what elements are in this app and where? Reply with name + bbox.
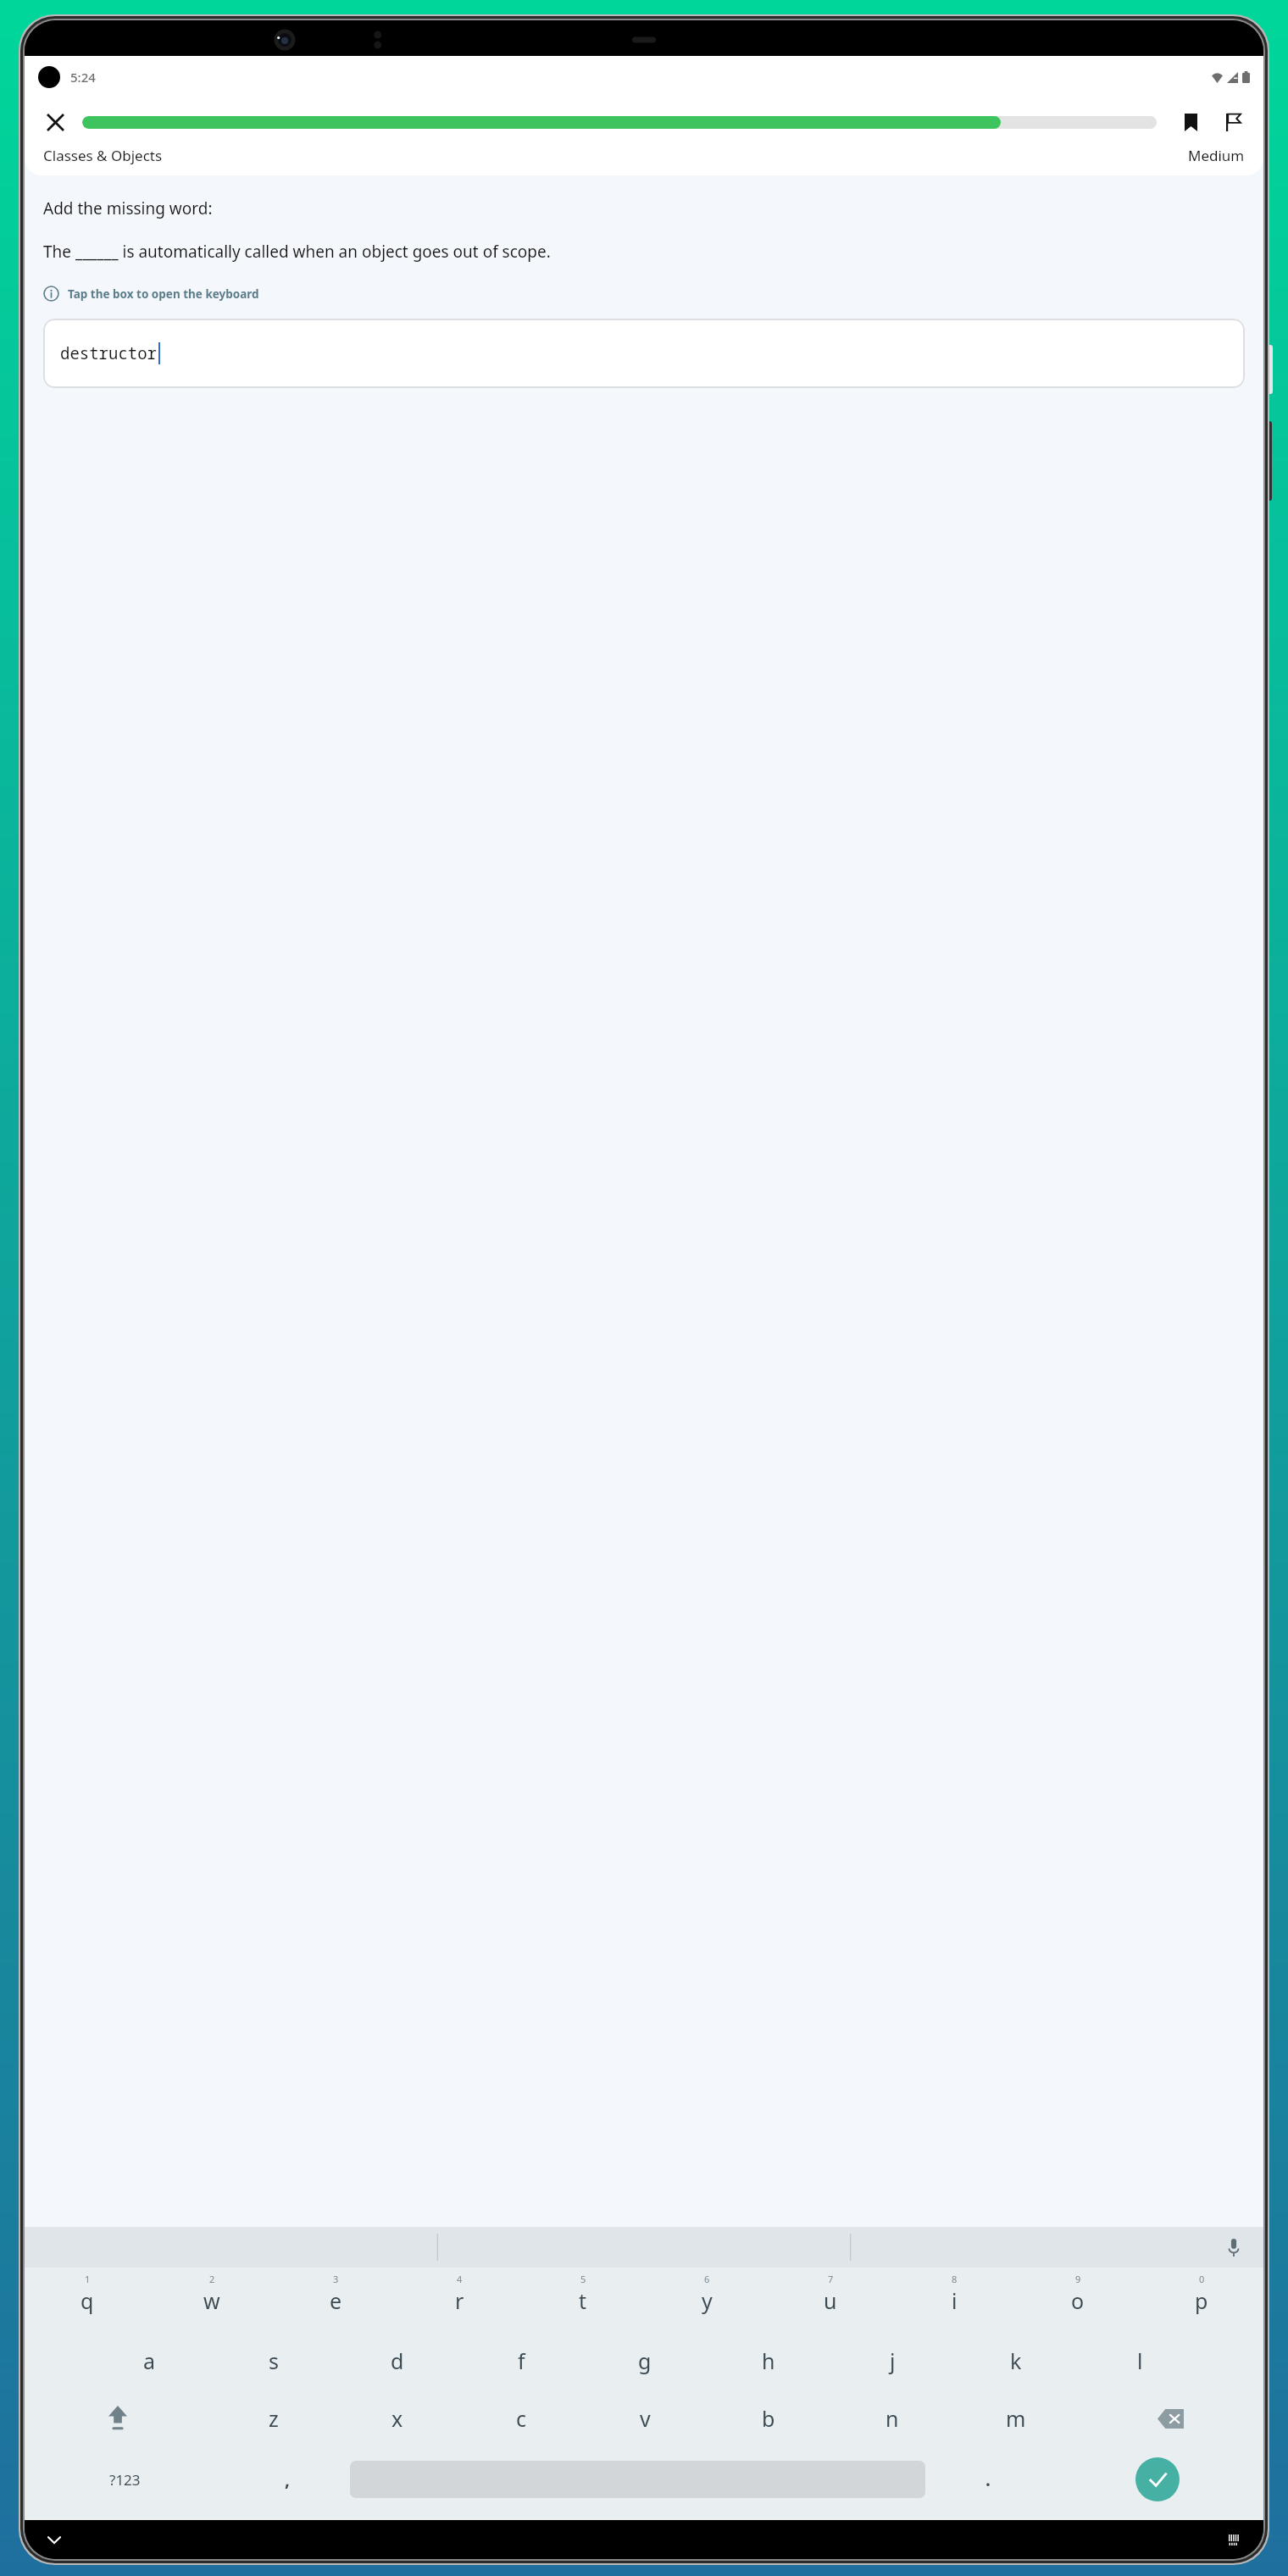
staticText: 3 <box>333 2273 339 2285</box>
staticText: y <box>702 2286 713 2315</box>
staticText: . <box>985 2468 991 2492</box>
staticText: w <box>203 2286 220 2315</box>
button[interactable]: 9 <box>1016 2271 1140 2332</box>
staticText: , <box>285 2468 290 2492</box>
button[interactable]: destructor <box>43 319 1245 388</box>
staticText: Medium <box>1188 146 1245 165</box>
staticText: n <box>885 2404 899 2433</box>
button[interactable]: Close <box>36 103 74 141</box>
staticText: k <box>1010 2346 1022 2375</box>
button[interactable]: 8 <box>892 2271 1016 2332</box>
staticText: g <box>638 2346 652 2375</box>
button[interactable]: 6 <box>645 2271 769 2332</box>
button[interactable]: . <box>925 2447 1051 2512</box>
button[interactable]: x <box>336 2390 459 2447</box>
staticText: 7 <box>828 2273 834 2285</box>
staticText: u <box>824 2286 837 2315</box>
button[interactable]: Hide keyboard <box>43 2529 65 2551</box>
button[interactable]: n <box>830 2390 954 2447</box>
staticText: 6 <box>704 2273 710 2285</box>
button[interactable]: a <box>87 2332 212 2390</box>
button[interactable]: j <box>830 2332 954 2390</box>
button[interactable]: 5 <box>521 2271 645 2332</box>
staticText: j <box>890 2346 896 2375</box>
staticText: 5 <box>580 2273 586 2285</box>
button[interactable]: Report <box>1214 103 1252 141</box>
button[interactable]: 1 <box>25 2271 149 2332</box>
button[interactable]: l <box>1078 2332 1202 2390</box>
button[interactable]: m <box>954 2390 1078 2447</box>
staticText: ?123 <box>109 2470 141 2490</box>
staticText: z <box>269 2404 279 2433</box>
button[interactable]: Voice input <box>1219 2233 1248 2262</box>
button[interactable]: Backspace <box>1078 2390 1263 2447</box>
staticText: The ______ is automatically called when … <box>43 241 551 263</box>
button[interactable]: Tap the box to open the keyboard <box>43 286 259 302</box>
staticText: p <box>1195 2286 1208 2315</box>
staticText: o <box>1071 2286 1085 2315</box>
staticText: 2 <box>209 2273 215 2285</box>
staticText: b <box>762 2404 775 2433</box>
staticText: v <box>640 2404 651 2433</box>
staticText: Add the missing word: <box>43 197 213 219</box>
staticText: Tap the box to open the keyboard <box>68 286 259 302</box>
button[interactable]: z <box>211 2390 336 2447</box>
button[interactable]: Shift <box>25 2390 211 2447</box>
staticText: t <box>579 2286 587 2315</box>
button[interactable]: v <box>583 2390 707 2447</box>
button[interactable]: f <box>459 2332 583 2390</box>
staticText: x <box>391 2404 403 2433</box>
staticText: m <box>1006 2404 1026 2433</box>
button[interactable]: d <box>336 2332 459 2390</box>
button[interactable]: 2 <box>149 2271 274 2332</box>
staticText: 8 <box>952 2273 958 2285</box>
button[interactable]: g <box>583 2332 707 2390</box>
staticText: 4 <box>457 2273 463 2285</box>
staticText: f <box>518 2346 525 2375</box>
staticText: 9 <box>1075 2273 1081 2285</box>
button[interactable]: 0 <box>1140 2271 1263 2332</box>
button[interactable]: h <box>707 2332 830 2390</box>
staticText: 1 <box>85 2273 91 2285</box>
staticText: s <box>269 2346 279 2375</box>
button[interactable]: 3 <box>274 2271 397 2332</box>
button[interactable]: , <box>225 2447 350 2512</box>
button[interactable]: 4 <box>397 2271 521 2332</box>
staticText: d <box>391 2346 404 2375</box>
staticText: h <box>762 2346 775 2375</box>
button[interactable]: b <box>707 2390 830 2447</box>
button[interactable]: k <box>954 2332 1078 2390</box>
button[interactable]: Switch input method <box>1223 2529 1245 2551</box>
staticText: c <box>516 2404 527 2433</box>
staticText: 5:24 <box>70 69 96 86</box>
staticText: a <box>143 2346 156 2375</box>
button[interactable]: 7 <box>769 2271 892 2332</box>
staticText: destructor <box>60 342 158 364</box>
staticText: i <box>952 2286 958 2315</box>
button[interactable]: ?123 <box>25 2447 225 2512</box>
staticText: e <box>330 2286 342 2315</box>
staticText: q <box>80 2286 94 2315</box>
button[interactable]: c <box>459 2390 583 2447</box>
staticText: 0 <box>1199 2273 1205 2285</box>
staticText: r <box>455 2286 464 2315</box>
button[interactable]: Enter <box>1135 2457 1180 2501</box>
staticText: Classes & Objects <box>43 146 163 165</box>
staticText: l <box>1137 2346 1143 2375</box>
button[interactable]: Bookmark <box>1172 103 1209 141</box>
button[interactable]: s <box>212 2332 336 2390</box>
